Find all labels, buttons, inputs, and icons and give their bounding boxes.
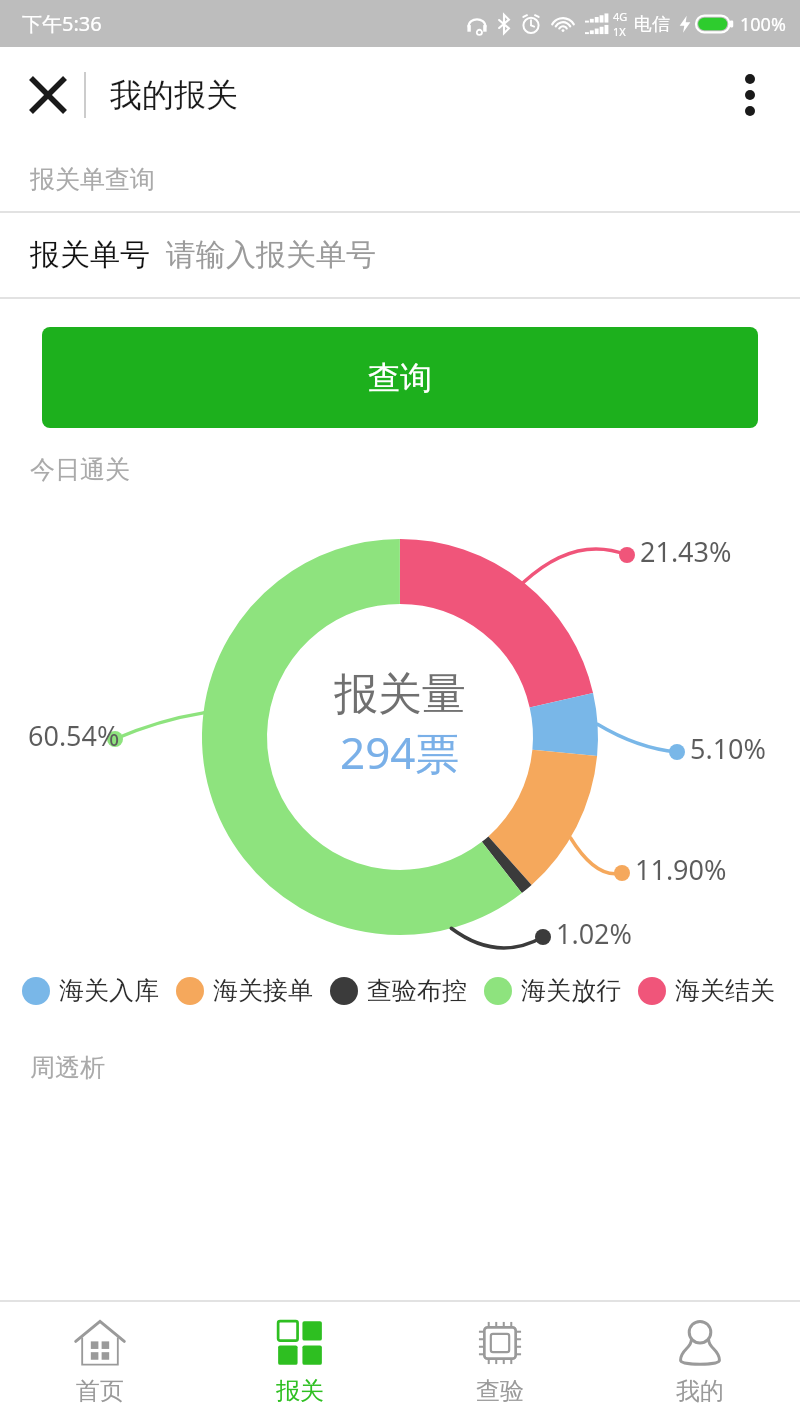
staticText: 查询 <box>368 358 432 398</box>
staticText: 查验 <box>476 1376 524 1406</box>
staticText: 海关接单 <box>213 975 313 1006</box>
button[interactable]: Close <box>12 59 84 131</box>
button[interactable]: 首页 <box>0 1302 200 1422</box>
staticText: 100% <box>740 12 786 37</box>
button[interactable]: 我的 <box>600 1302 800 1422</box>
staticText: 报关单号 <box>30 236 150 274</box>
staticText: 电信 <box>634 13 670 36</box>
staticText: 请输入报关单号 <box>166 236 376 274</box>
staticText: 查验布控 <box>367 975 467 1006</box>
button[interactable]: 查询 <box>42 327 758 428</box>
button[interactable]: 海关接单 <box>176 975 313 1006</box>
button[interactable]: 海关入库 <box>22 975 159 1006</box>
button[interactable]: 海关放行 <box>484 975 621 1006</box>
button[interactable]: 报关 <box>200 1302 400 1422</box>
staticText: 294票 <box>340 722 460 782</box>
staticText: 报关量 <box>334 667 466 722</box>
staticText: 下午5:36 <box>22 10 102 37</box>
staticText: 今日通关 <box>30 454 130 485</box>
button[interactable]: 查验布控 <box>330 975 467 1006</box>
staticText: 11.90% <box>635 851 727 888</box>
staticText: 报关单查询 <box>30 164 155 195</box>
staticText: 首页 <box>76 1376 124 1406</box>
staticText: 周透析 <box>30 1052 105 1083</box>
staticText: 海关入库 <box>59 975 159 1006</box>
staticText: 1X <box>613 24 626 39</box>
staticText: 60.54% <box>28 717 120 754</box>
button[interactable]: More options <box>714 59 786 131</box>
staticText: 21.43% <box>640 533 732 570</box>
staticText: 报关 <box>276 1376 324 1406</box>
staticText: 海关放行 <box>521 975 621 1006</box>
staticText: 我的 <box>676 1376 724 1406</box>
button[interactable]: 报关单号 <box>0 213 800 297</box>
staticText: 我的报关 <box>110 75 238 115</box>
button[interactable]: 查验 <box>400 1302 600 1422</box>
staticText: 海关结关 <box>675 975 775 1006</box>
staticText: 1.02% <box>556 915 633 952</box>
staticText: 4G <box>613 9 628 24</box>
button[interactable]: 海关结关 <box>638 975 775 1006</box>
staticText: 5.10% <box>690 730 767 767</box>
